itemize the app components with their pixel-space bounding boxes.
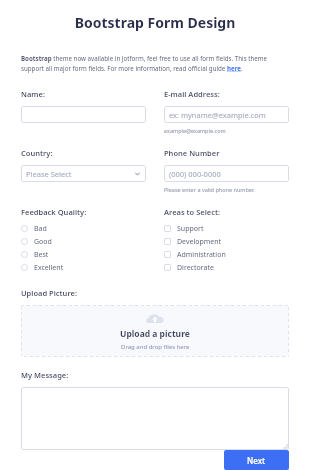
button[interactable]: Next: [224, 450, 289, 470]
staticText: Please Select: [26, 169, 72, 179]
staticText: Name:: [21, 89, 45, 99]
staticText: Upload Picture:: [21, 288, 77, 298]
button[interactable]: [21, 106, 146, 123]
button[interactable]: Good: [21, 235, 146, 248]
staticText: Development: [177, 237, 222, 247]
staticText: Directorate: [177, 263, 214, 273]
staticText: Excellent: [34, 263, 64, 273]
staticText: Phone Number: [164, 148, 220, 158]
button[interactable]: Administration: [164, 248, 289, 261]
staticText: Drag and drop files here: [121, 343, 190, 351]
button[interactable]: Upload a picture: [21, 305, 289, 357]
button[interactable]: Directorate: [164, 261, 289, 274]
staticText: Bad: [34, 224, 47, 234]
staticText: E-mail Address:: [164, 89, 220, 99]
button[interactable]: Best: [21, 248, 146, 261]
staticText: Good: [34, 237, 52, 247]
staticText: Please enter a valid phone number.: [164, 186, 255, 193]
button[interactable]: Please Select: [21, 165, 146, 182]
button[interactable]: Bad: [21, 222, 146, 235]
staticText: Areas to Select:: [164, 207, 221, 217]
staticText: Feedback Quality:: [21, 207, 87, 217]
button[interactable]: Support: [164, 222, 289, 235]
staticText: My Message:: [21, 370, 69, 380]
button[interactable]: Excellent: [21, 261, 146, 274]
staticText: Upload a picture: [120, 328, 190, 340]
button[interactable]: Development: [164, 235, 289, 248]
staticText: example@example.com: [164, 127, 226, 134]
staticText: Country:: [21, 148, 53, 158]
staticText: ex: myname@example.com: [169, 110, 266, 120]
staticText: Support: [177, 224, 204, 234]
button[interactable]: [21, 387, 289, 450]
staticText: Best: [34, 250, 49, 260]
staticText: Administration: [177, 250, 226, 260]
staticText: (000) 000-0000: [169, 169, 221, 179]
staticText: Bootstrap Form Design: [21, 13, 289, 32]
button[interactable]: ex: myname@example.com: [164, 106, 289, 123]
staticText: Bootstrap theme now available in Jotform…: [21, 54, 289, 73]
button[interactable]: (000) 000-0000: [164, 165, 289, 182]
staticText: Next: [247, 455, 266, 466]
